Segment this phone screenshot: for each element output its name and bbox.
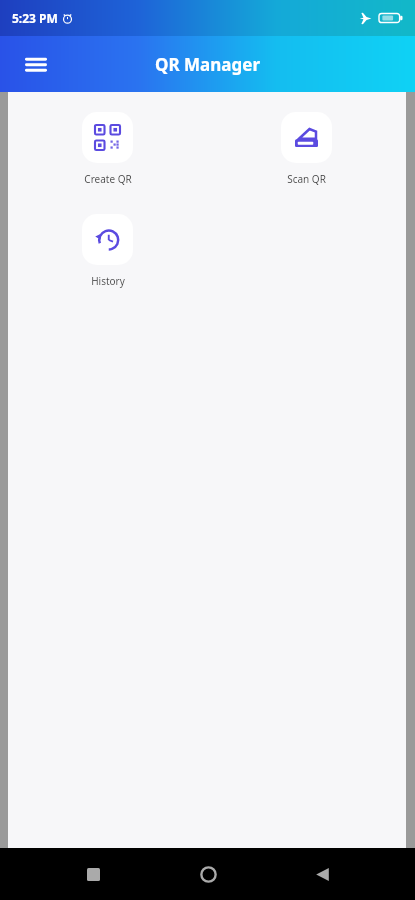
button[interactable]: History <box>8 214 207 288</box>
staticText: Scan QR <box>287 172 326 186</box>
button[interactable]: Scan QR <box>207 112 406 186</box>
button[interactable]: Home <box>186 852 230 896</box>
staticText: Create QR <box>84 172 132 186</box>
button[interactable]: Create QR <box>8 112 207 186</box>
button[interactable]: Open navigation menu <box>14 42 58 86</box>
staticText: 5:23 PM <box>12 10 58 26</box>
button[interactable]: Back <box>300 852 344 896</box>
staticText: QR Manager <box>155 53 260 76</box>
button[interactable]: Recent apps <box>71 852 115 896</box>
staticText: History <box>91 274 125 288</box>
